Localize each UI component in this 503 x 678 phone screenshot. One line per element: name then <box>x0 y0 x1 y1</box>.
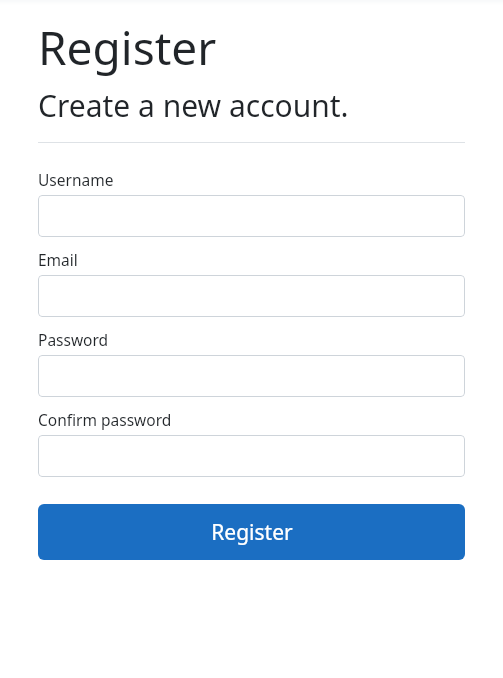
button[interactable] <box>38 195 465 237</box>
button[interactable] <box>38 275 465 317</box>
button[interactable]: Register <box>38 504 465 560</box>
button[interactable] <box>38 355 465 397</box>
staticText: Register <box>211 518 293 547</box>
staticText: Register <box>38 16 217 79</box>
button[interactable] <box>38 435 465 477</box>
staticText: Password <box>38 329 109 350</box>
staticText: Confirm password <box>38 409 172 430</box>
staticText: Email <box>38 249 78 270</box>
staticText: Username <box>38 169 114 190</box>
staticText: Create a new account. <box>38 85 349 126</box>
